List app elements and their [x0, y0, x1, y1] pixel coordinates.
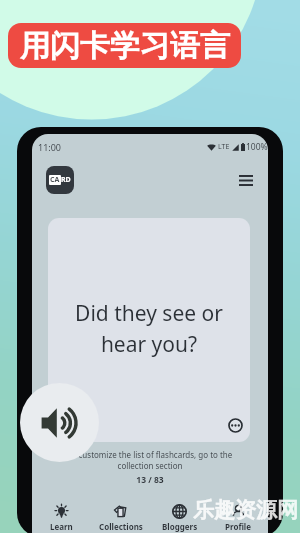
staticText: LTE — [218, 142, 230, 152]
button[interactable]: Did they see or hear you? — [48, 218, 250, 442]
button[interactable]: Collections — [91, 503, 150, 533]
staticText: CA — [50, 175, 60, 185]
staticText: Bloggers — [162, 521, 198, 532]
staticText: RD — [61, 175, 71, 185]
button[interactable]: Play sound — [20, 383, 99, 462]
button[interactable]: Learn — [32, 503, 91, 533]
button[interactable]: CA — [46, 166, 74, 194]
button[interactable]: Profile — [209, 503, 268, 533]
staticText: Profile — [225, 521, 252, 532]
button[interactable]: Bloggers — [150, 503, 209, 533]
staticText: Did they see or hear you? — [75, 299, 223, 358]
staticText: Collections — [99, 521, 143, 532]
staticText: 100% — [246, 141, 268, 153]
staticText: 13 / 83 — [136, 474, 164, 486]
button[interactable]: More options — [227, 417, 244, 434]
staticText: 11:00 — [38, 141, 62, 153]
staticText: 乐趣资源网 — [193, 497, 298, 523]
staticText: To customize the list of flashcards, go … — [42, 449, 258, 471]
staticText: 用闪卡学习语言 — [20, 27, 230, 65]
button[interactable]: Menu — [234, 168, 258, 192]
staticText: Learn — [50, 521, 73, 532]
